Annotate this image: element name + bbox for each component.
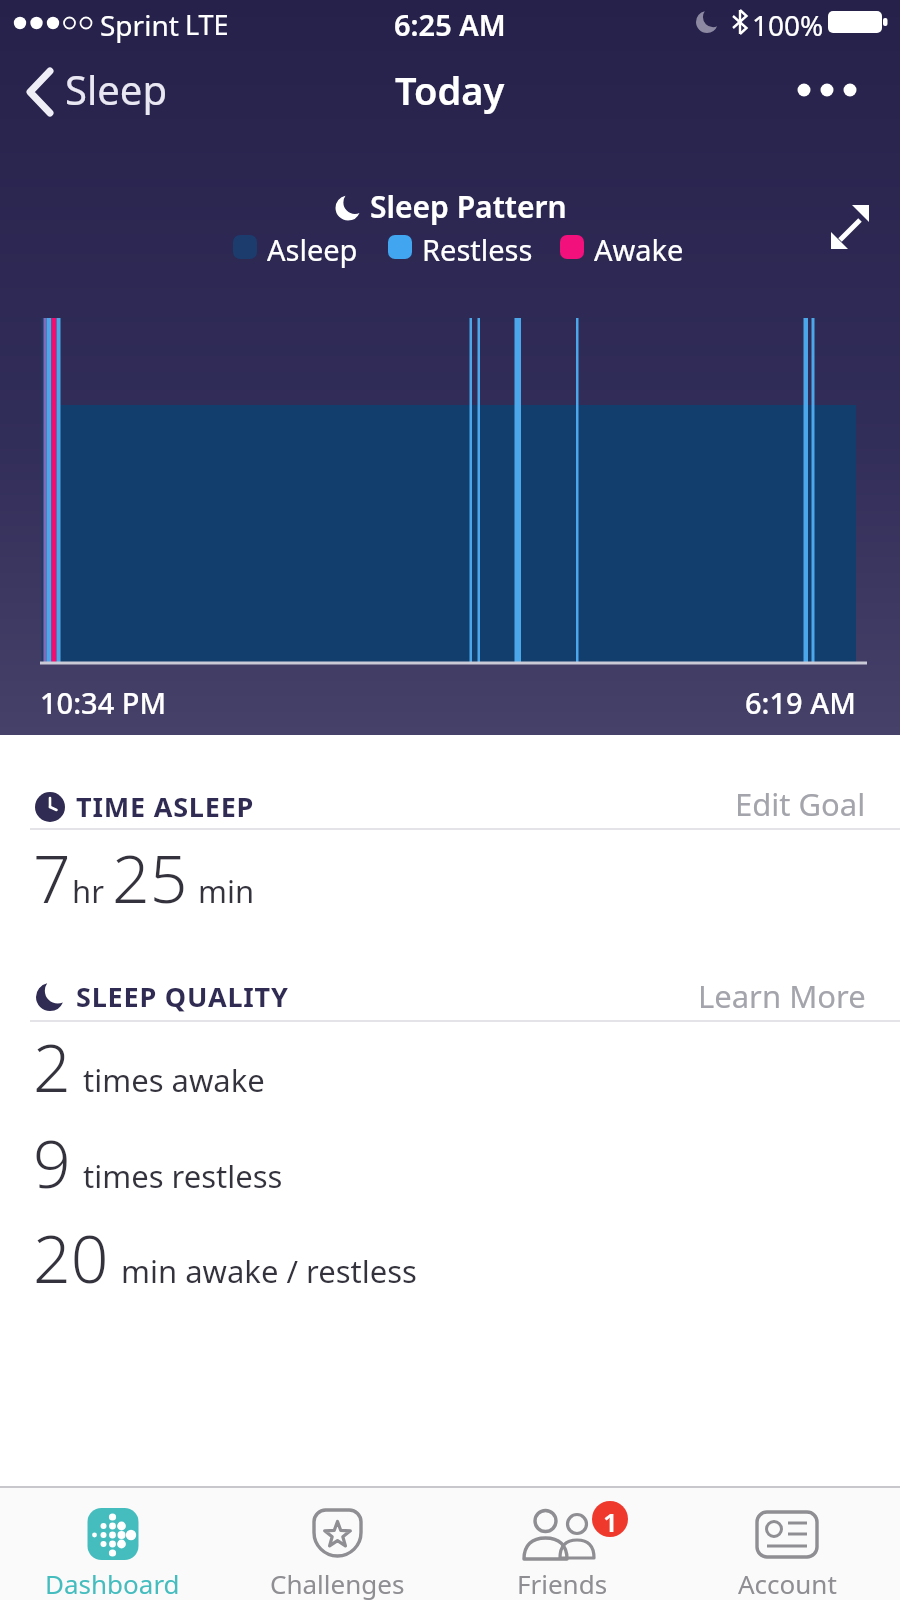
staticText: 1 [603, 1504, 618, 1539]
staticText: 2 [33, 1021, 71, 1111]
button[interactable]: Edit Goal [700, 782, 880, 826]
staticText: 6:19 AM [745, 683, 856, 722]
staticText: 7 [33, 832, 71, 922]
staticText: Sleep [65, 62, 167, 116]
staticText: Dashboard [45, 1566, 180, 1600]
staticText: SLEEP QUALITY [76, 978, 289, 1015]
staticText: 25 [112, 832, 188, 922]
staticText: 10:34 PM [40, 683, 167, 722]
staticText: LTE [185, 6, 229, 43]
button[interactable]: Dashboard [22, 1490, 202, 1600]
staticText: Today [395, 64, 505, 116]
staticText: min awake / restless [121, 1250, 417, 1292]
button[interactable] [824, 196, 884, 256]
staticText: Awake [594, 230, 684, 269]
staticText: Sleep Pattern [370, 186, 567, 227]
staticText: Friends [517, 1566, 608, 1600]
staticText: 9 [33, 1117, 71, 1207]
staticText: min [198, 870, 255, 912]
staticText: TIME ASLEEP [76, 788, 255, 825]
staticText: Asleep [267, 230, 358, 269]
button[interactable] [786, 62, 870, 118]
staticText: times awake [83, 1059, 265, 1101]
button[interactable]: Friends [472, 1490, 652, 1600]
button[interactable]: Sleep [20, 57, 180, 121]
staticText: Challenges [270, 1566, 405, 1600]
staticText: Learn More [698, 975, 866, 1017]
staticText: Account [738, 1566, 837, 1600]
staticText: 100% [752, 6, 824, 44]
staticText: Restless [422, 230, 533, 269]
staticText: 20 [33, 1212, 109, 1302]
staticText: hr [72, 870, 104, 912]
button[interactable]: Account [697, 1490, 877, 1600]
staticText: Edit Goal [735, 783, 866, 825]
button[interactable]: Learn More [680, 974, 880, 1018]
staticText: 6:25 AM [394, 5, 506, 44]
button[interactable]: Challenges [247, 1490, 427, 1600]
staticText: Sprint [100, 6, 179, 44]
staticText: times restless [83, 1155, 283, 1197]
